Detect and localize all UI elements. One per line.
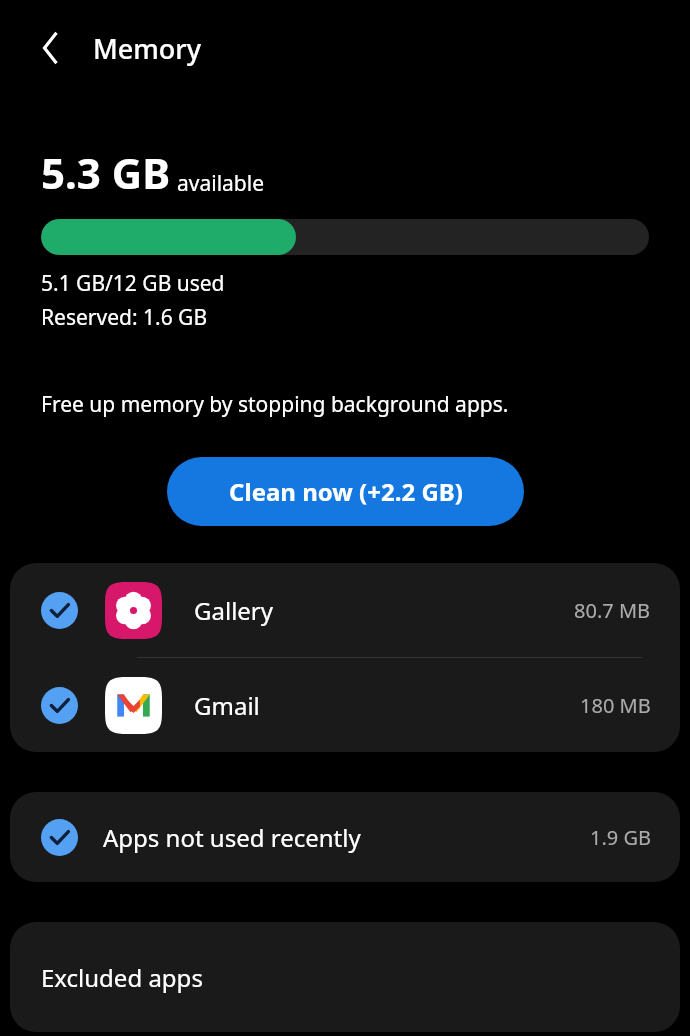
button[interactable]: Clean now (+2.2 GB) xyxy=(167,457,524,526)
other: Selected xyxy=(41,687,78,724)
staticText: 5.3 GB xyxy=(41,144,171,201)
button[interactable]: Excluded apps xyxy=(10,922,680,1032)
button[interactable]: Selected xyxy=(10,792,680,882)
staticText: 80.7 MB xyxy=(574,597,651,624)
button[interactable]: Selected xyxy=(10,563,680,657)
staticText: Gmail xyxy=(194,689,580,722)
staticText: 1.9 GB xyxy=(590,824,651,851)
button[interactable]: Selected xyxy=(10,658,680,752)
staticText: 180 MB xyxy=(580,692,651,719)
staticText: available xyxy=(177,169,265,198)
staticText: Reserved: 1.6 GB xyxy=(41,303,208,332)
staticText: Apps not used recently xyxy=(103,821,590,854)
staticText: Free up memory by stopping background ap… xyxy=(41,390,509,419)
other: Selected xyxy=(41,819,78,856)
staticText: Excluded apps xyxy=(41,961,203,994)
other: Selected xyxy=(41,592,78,629)
staticText: Gallery xyxy=(194,594,574,627)
staticText: 5.1 GB/12 GB used xyxy=(41,269,225,298)
staticText: Clean now (+2.2 GB) xyxy=(229,475,463,508)
staticText: Memory xyxy=(93,30,202,67)
button[interactable]: Back xyxy=(26,24,74,72)
